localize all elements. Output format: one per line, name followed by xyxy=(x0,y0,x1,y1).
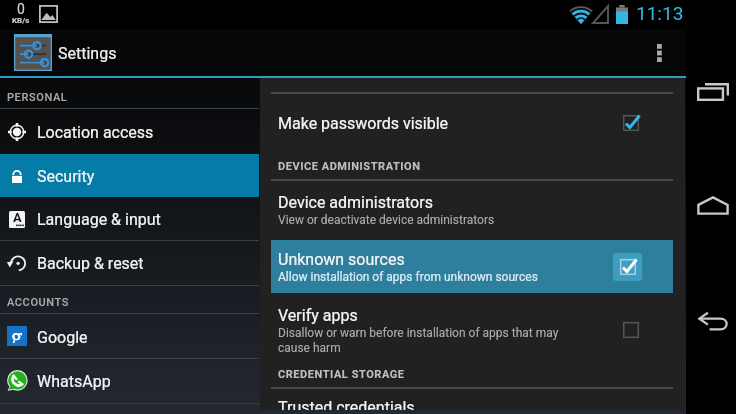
button[interactable]: More options xyxy=(639,29,679,76)
staticText: CREDENTIAL STORAGE xyxy=(278,368,405,381)
staticText: 11:13 xyxy=(636,2,684,24)
staticText: KB/s xyxy=(12,16,30,25)
staticText: Settings xyxy=(58,44,117,63)
staticText: WhatsApp xyxy=(37,372,111,391)
staticText: Location access xyxy=(37,123,154,142)
button[interactable]: g xyxy=(0,314,259,358)
staticText: Backup & reset xyxy=(37,254,144,273)
staticText: Trusted credentials xyxy=(278,398,415,410)
button[interactable]: Security xyxy=(0,154,259,197)
button[interactable]: Back xyxy=(689,298,736,343)
staticText: Make passwords visible xyxy=(278,114,449,133)
button[interactable]: Unknown sources xyxy=(271,240,673,293)
staticText: DEVICE ADMINISTRATION xyxy=(278,160,421,173)
staticText: Unknown sources xyxy=(278,250,405,269)
staticText: 0 xyxy=(17,1,25,16)
button[interactable]: Verify apps xyxy=(271,296,673,364)
staticText: Language & input xyxy=(37,210,161,229)
staticText: PERSONAL xyxy=(7,91,68,104)
button[interactable]: Trusted credentials xyxy=(271,397,673,410)
staticText: A xyxy=(13,211,22,225)
button[interactable]: Location access xyxy=(0,109,259,154)
staticText: Security xyxy=(37,167,95,186)
staticText: Google xyxy=(37,328,88,347)
staticText: Verify apps xyxy=(278,306,358,325)
staticText: View or deactivate device administrators xyxy=(278,213,495,227)
button[interactable]: WhatsApp xyxy=(0,358,259,403)
staticText: Disallow or warn before installation of … xyxy=(278,326,559,355)
button[interactable]: Home xyxy=(688,183,736,228)
button[interactable]: Backup & reset xyxy=(0,240,259,285)
button[interactable]: Device administrators xyxy=(271,182,673,237)
staticText: ACCOUNTS xyxy=(7,296,70,309)
button[interactable]: Make passwords visible xyxy=(271,99,673,147)
button[interactable]: A xyxy=(0,197,259,240)
button[interactable]: Recent apps xyxy=(688,69,736,114)
staticText: g xyxy=(11,323,23,343)
staticText: Device administrators xyxy=(278,193,433,212)
staticText: Allow installation of apps from unknown … xyxy=(278,270,538,284)
